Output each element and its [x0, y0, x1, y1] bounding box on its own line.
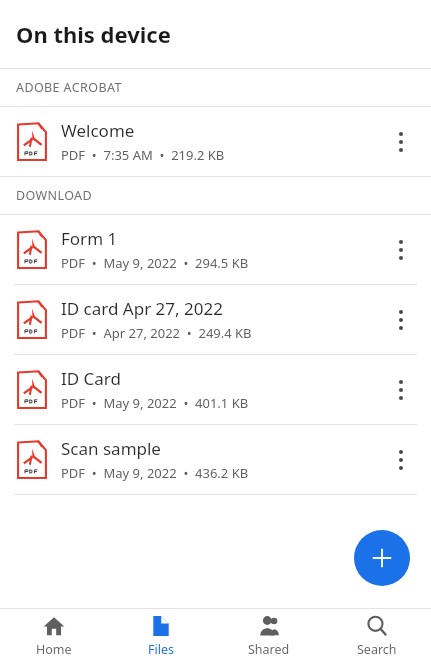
other: Search [366, 615, 388, 637]
button[interactable]: More options [379, 298, 423, 342]
staticText: DOWNLOAD [16, 187, 93, 204]
staticText: PDF • May 9, 2022 • 294.5 KB [61, 254, 249, 272]
button[interactable]: More options [379, 228, 423, 272]
staticText: Search [357, 641, 397, 658]
staticText: Scan sample [61, 437, 161, 460]
button[interactable]: Shared [215, 609, 323, 664]
button[interactable]: Scan sample [0, 425, 431, 494]
button[interactable]: More options [379, 368, 423, 412]
staticText: PDF • Apr 27, 2022 • 249.4 KB [61, 324, 252, 342]
staticText: PDF • May 9, 2022 • 436.2 KB [61, 464, 249, 482]
other: Files [150, 615, 172, 637]
staticText: ADOBE ACROBAT [16, 79, 122, 96]
staticText: PDF • May 9, 2022 • 401.1 KB [61, 394, 249, 412]
button[interactable]: Home [0, 609, 107, 664]
button[interactable]: More options [379, 120, 423, 164]
staticText: PDF • 7:35 AM • 219.2 KB [61, 146, 225, 164]
button[interactable]: ID card Apr 27, 2022 [0, 285, 431, 354]
staticText: Welcome [61, 119, 135, 142]
button[interactable]: Files [107, 609, 215, 664]
button[interactable]: Welcome [0, 107, 431, 176]
button[interactable]: ID Card [0, 355, 431, 424]
staticText: ID Card [61, 367, 122, 390]
staticText: ID card Apr 27, 2022 [61, 297, 223, 320]
staticText: On this device [16, 19, 171, 49]
staticText: Form 1 [61, 227, 118, 250]
button[interactable]: More options [379, 438, 423, 482]
staticText: Files [148, 641, 174, 658]
staticText: Home [36, 641, 72, 658]
button[interactable]: Search [323, 609, 431, 664]
other: Home [43, 615, 65, 637]
button[interactable]: Form 1 [0, 215, 431, 284]
other: Shared [258, 615, 280, 637]
staticText: Shared [248, 641, 290, 658]
button[interactable]: Create [354, 530, 410, 586]
